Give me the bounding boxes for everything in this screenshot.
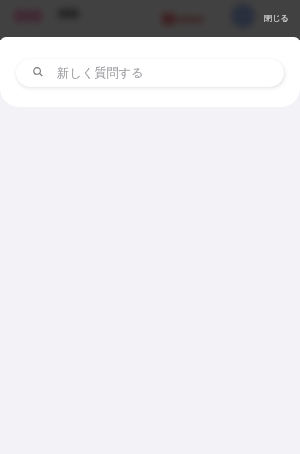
button[interactable]: 新しく質問する (16, 59, 284, 87)
button[interactable]: 閉じる (258, 5, 294, 31)
staticText: 新しく質問する (57, 65, 144, 80)
staticText: 閉じる (264, 13, 289, 23)
